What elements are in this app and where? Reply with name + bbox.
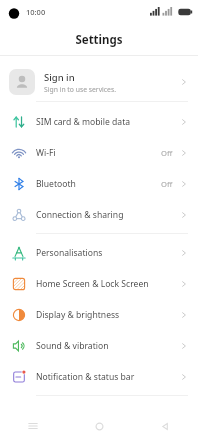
- button[interactable]: Recents: [0, 413, 66, 439]
- staticText: Display & brightness: [36, 309, 179, 321]
- staticText: SIM card & mobile data: [36, 116, 179, 128]
- staticText: Sign in: [44, 71, 75, 84]
- staticText: Off: [161, 179, 173, 189]
- staticText: Bluetooth: [36, 178, 161, 190]
- staticText: Personalisations: [36, 247, 179, 259]
- button[interactable]: Bluetooth: [0, 168, 198, 199]
- button[interactable]: Sound & vibration: [0, 330, 198, 361]
- button[interactable]: Sign in: [0, 63, 198, 101]
- button[interactable]: Notification & status bar: [0, 361, 198, 392]
- button[interactable]: Wi-Fi: [0, 137, 198, 168]
- button[interactable]: SIM card & mobile data: [0, 106, 198, 137]
- staticText: Settings: [75, 32, 123, 48]
- button[interactable]: Back: [132, 413, 198, 439]
- staticText: Sign in to use services.: [44, 85, 117, 94]
- staticText: Connection & sharing: [36, 209, 179, 221]
- staticText: Home Screen & Lock Screen: [36, 278, 179, 290]
- staticText: Notification & status bar: [36, 371, 179, 383]
- staticText: Wi-Fi: [36, 147, 161, 159]
- button[interactable]: Display & brightness: [0, 299, 198, 330]
- staticText: 10:00: [26, 7, 46, 17]
- button[interactable]: Connection & sharing: [0, 199, 198, 230]
- button[interactable]: Personalisations: [0, 237, 198, 268]
- button[interactable]: Home: [66, 413, 132, 439]
- staticText: Off: [161, 148, 173, 158]
- button[interactable]: Home Screen & Lock Screen: [0, 268, 198, 299]
- staticText: Sound & vibration: [36, 340, 179, 352]
